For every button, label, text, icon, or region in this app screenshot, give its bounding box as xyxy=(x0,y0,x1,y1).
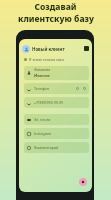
staticText: Я знаю только имя xyxy=(29,57,64,62)
staticText: Иванов xyxy=(34,73,50,79)
button[interactable]: Сохранить xyxy=(84,46,89,51)
staticText: +7(999)999-99-99 xyxy=(34,100,64,105)
staticText: Телефон xyxy=(34,86,49,91)
button[interactable]: +7(999)999-99-99 xyxy=(24,97,89,108)
staticText: Создавай xyxy=(34,1,77,13)
staticText: клиентскую базу xyxy=(18,13,94,25)
button[interactable]: Я знаю только имя xyxy=(24,57,92,62)
button[interactable]: Фамилия xyxy=(24,66,89,80)
staticText: Фамилия xyxy=(34,67,51,72)
button[interactable]: Телефон xyxy=(24,83,89,94)
button[interactable]: Эл. почта xyxy=(24,114,89,125)
button[interactable]: Комментарий xyxy=(24,142,89,153)
staticText: Новый клиент xyxy=(32,46,65,52)
staticText: Эл. почта xyxy=(34,117,51,122)
button[interactable]: Профиль xyxy=(22,45,30,53)
staticText: Комментарий xyxy=(34,145,59,150)
button[interactable]: Instagram xyxy=(24,128,89,139)
button[interactable]: Добавить xyxy=(79,178,87,186)
staticText: Instagram xyxy=(34,131,52,136)
